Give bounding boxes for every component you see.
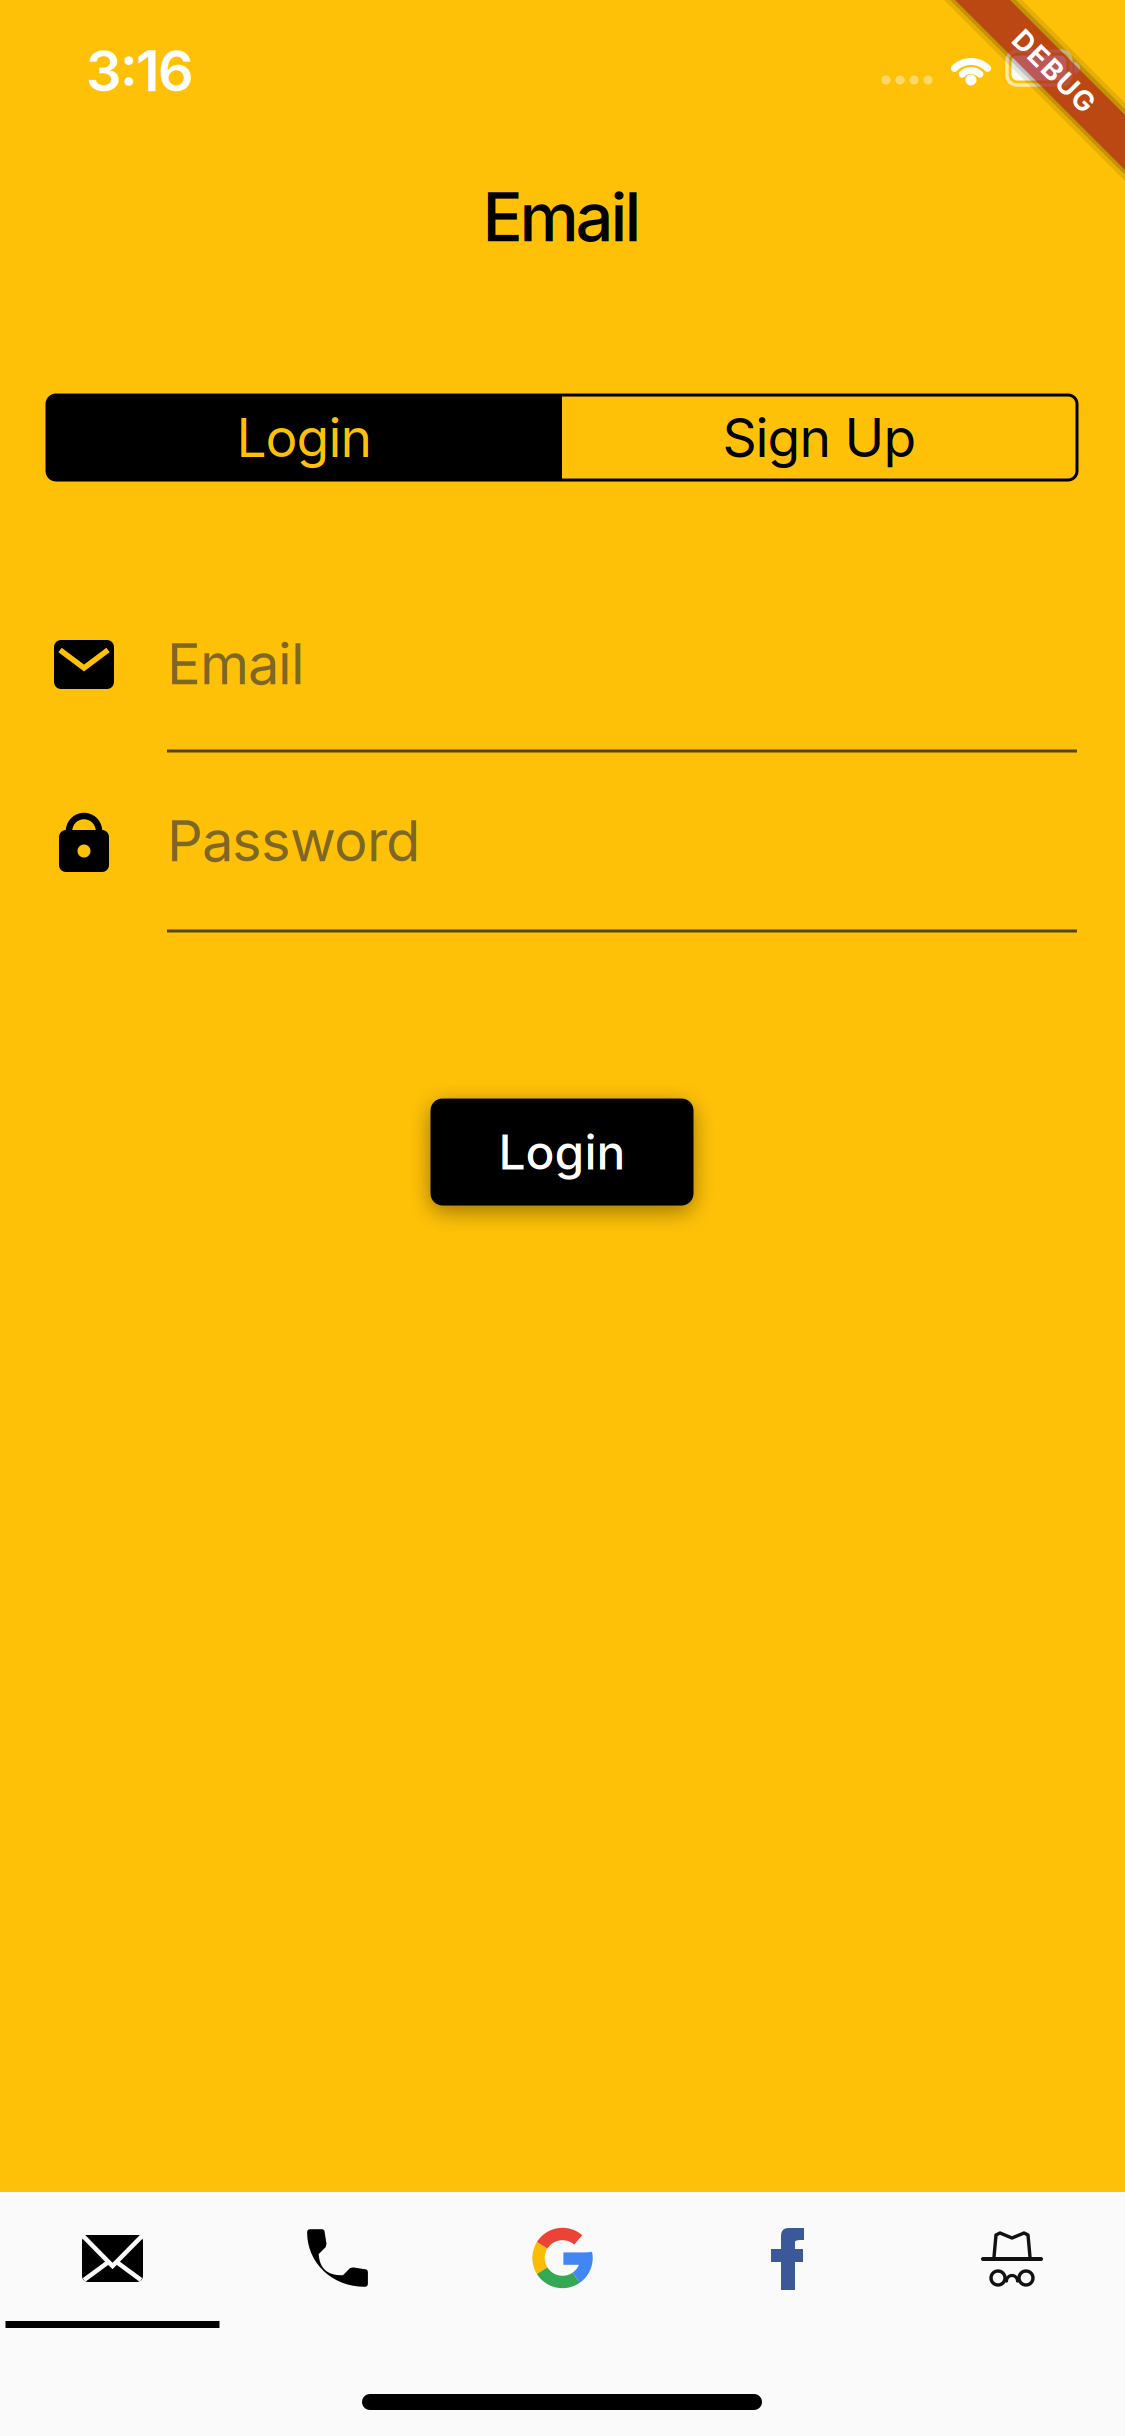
staticText: Password — [167, 807, 420, 875]
staticText: 3:16 — [86, 37, 194, 105]
button[interactable]: Facebook — [675, 2192, 900, 2336]
button[interactable]: Phone — [225, 2192, 450, 2336]
button[interactable]: Guest — [900, 2192, 1125, 2336]
button[interactable]: Email — [0, 2192, 225, 2336]
staticText: Email — [167, 630, 305, 698]
button[interactable]: Login — [47, 395, 562, 480]
staticText: Email — [482, 177, 641, 257]
staticText: Login — [498, 1123, 625, 1181]
button[interactable]: Sign Up — [562, 395, 1077, 480]
button[interactable]: Email — [47, 610, 1077, 753]
staticText: Sign Up — [722, 405, 916, 470]
staticText: DEBUG — [1002, 54, 1106, 88]
button[interactable]: Google — [450, 2192, 675, 2336]
button[interactable]: Password — [47, 790, 1077, 933]
button[interactable]: Login — [430, 1098, 693, 1205]
staticText: Login — [236, 405, 372, 470]
